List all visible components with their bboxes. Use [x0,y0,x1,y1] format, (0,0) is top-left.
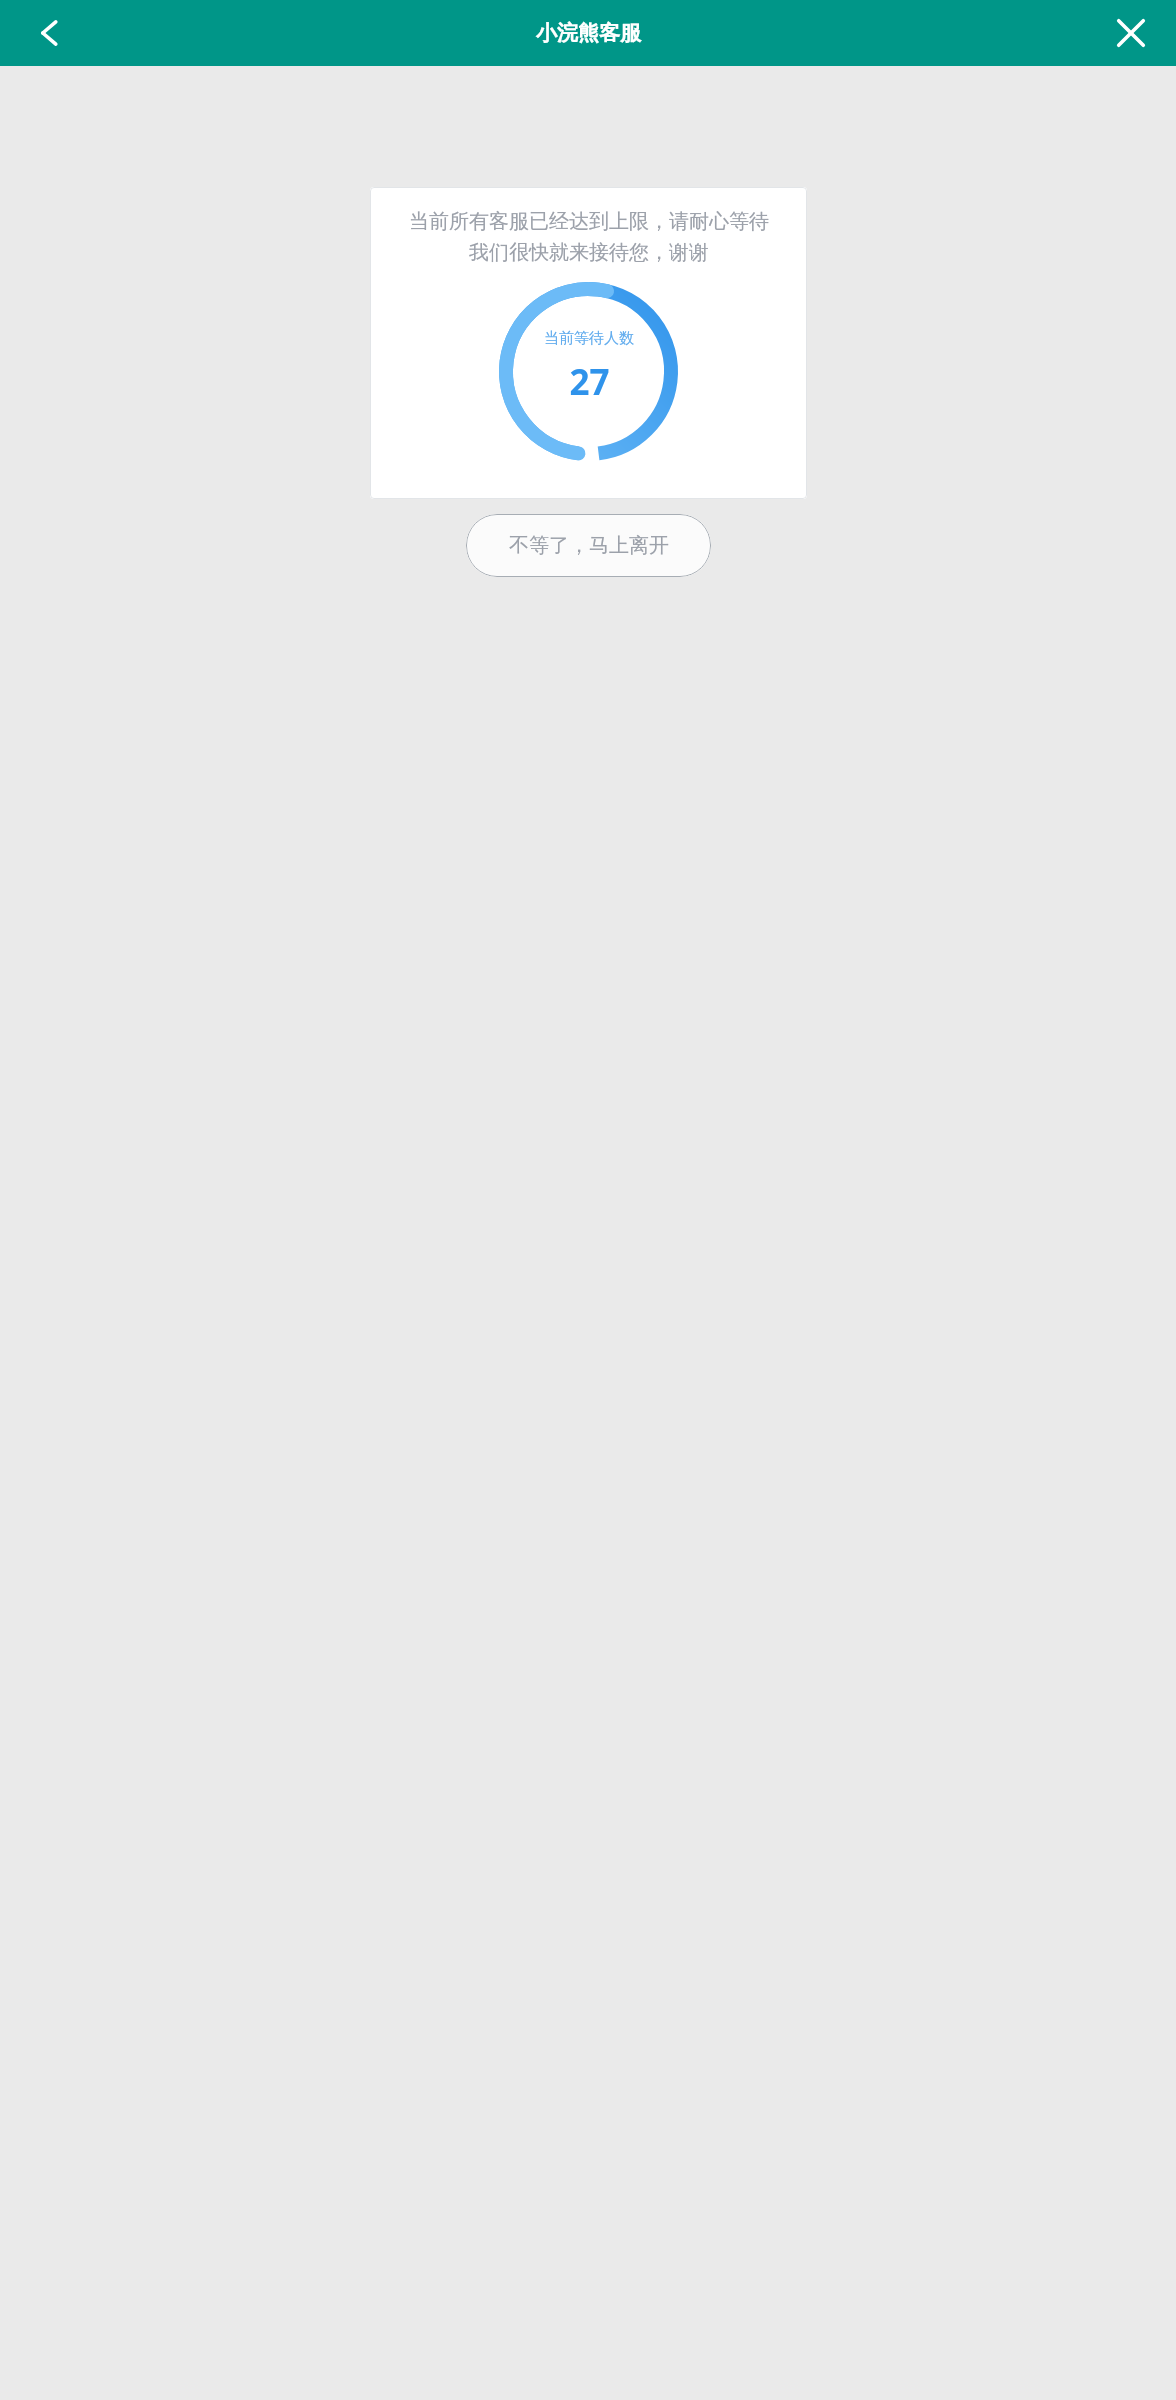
staticText: 27 [569,358,610,406]
staticText: 当前等待人数 [544,329,634,348]
button[interactable]: 不等了，马上离开 [466,514,711,577]
button[interactable]: Close [1105,7,1157,59]
button[interactable]: Back [22,7,74,59]
staticText: 小浣熊客服 [536,20,641,46]
staticText: 当前所有客服已经达到上限，请耐心等待 我们很快就来接待您，谢谢 [409,209,769,265]
staticText: 不等了，马上离开 [509,533,669,558]
